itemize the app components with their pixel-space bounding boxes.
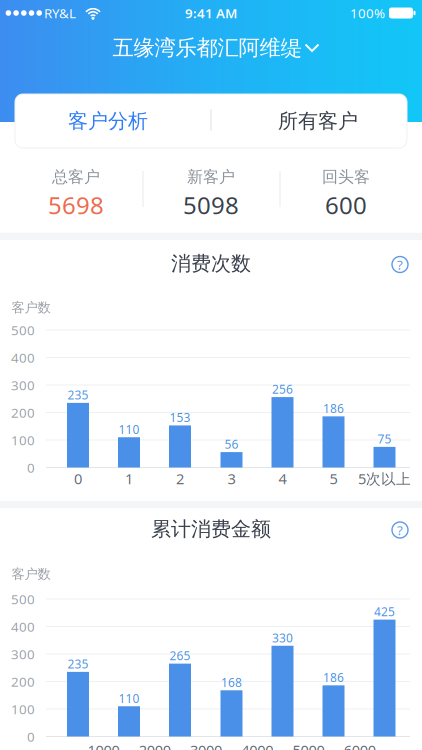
staticText: 600 — [325, 189, 367, 221]
staticText: 2000 — [139, 740, 171, 750]
staticText: 186 — [323, 400, 344, 416]
staticText: 200 — [11, 404, 35, 421]
staticText: 265 — [169, 648, 190, 664]
staticText: 1 — [125, 469, 133, 488]
button[interactable]: 帮助 — [389, 253, 411, 275]
staticText: 客户分析 — [68, 109, 148, 133]
staticText: 5次以上 — [358, 469, 411, 488]
staticText: 6000 — [344, 740, 376, 750]
staticText: 56 — [224, 436, 238, 452]
staticText: 2 — [176, 469, 184, 488]
button[interactable]: 五缘湾乐都汇阿维缇 — [112, 35, 319, 61]
staticText: 3000 — [190, 740, 222, 750]
staticText: ? — [397, 521, 403, 539]
button[interactable]: 客户分析 — [18, 99, 198, 143]
staticText: 4 — [278, 469, 286, 488]
staticText: 客户数 — [11, 299, 50, 316]
staticText: 400 — [11, 349, 35, 366]
staticText: 累计消费金额 — [151, 517, 271, 541]
staticText: 新客户 — [187, 167, 235, 187]
staticText: 0 — [27, 728, 35, 745]
staticText: 110 — [118, 690, 139, 706]
staticText: 100% — [350, 4, 385, 22]
staticText: 4000 — [241, 740, 273, 750]
staticText: 186 — [323, 669, 344, 685]
staticText: ? — [397, 256, 403, 273]
staticText: 300 — [11, 645, 35, 663]
staticText: 200 — [11, 673, 35, 690]
staticText: 0 — [27, 459, 35, 476]
staticText: 所有客户 — [278, 109, 358, 133]
staticText: 5000 — [292, 740, 324, 750]
staticText: 5098 — [183, 189, 239, 221]
staticText: 5698 — [48, 189, 104, 221]
staticText: 500 — [11, 590, 35, 608]
staticText: 1000 — [87, 740, 119, 750]
staticText: 消费次数 — [171, 251, 251, 276]
staticText: 400 — [11, 618, 35, 635]
staticText: 五缘湾乐都汇阿维缇 — [112, 35, 301, 61]
staticText: 75 — [377, 431, 391, 447]
staticText: 100 — [11, 700, 35, 718]
staticText: 300 — [11, 376, 35, 394]
button[interactable]: 所有客户 — [228, 99, 408, 143]
staticText: 235 — [67, 656, 88, 672]
staticText: RY&L — [44, 4, 76, 22]
staticText: 100 — [11, 431, 35, 449]
staticText: 110 — [118, 421, 139, 437]
staticText: 3 — [227, 469, 235, 488]
button[interactable]: 帮助 — [389, 519, 411, 541]
staticText: 回头客 — [322, 167, 370, 187]
staticText: 425 — [374, 604, 395, 620]
staticText: 5 — [329, 469, 337, 488]
staticText: 235 — [67, 387, 88, 403]
staticText: 168 — [221, 674, 242, 690]
staticText: 330 — [272, 630, 293, 646]
staticText: 0 — [74, 469, 82, 488]
staticText: 客户数 — [11, 566, 50, 582]
staticText: 总客户 — [52, 167, 100, 187]
staticText: 256 — [272, 381, 293, 397]
staticText: 153 — [169, 409, 190, 425]
staticText: 9:41 AM — [185, 4, 237, 22]
staticText: 500 — [11, 321, 35, 339]
